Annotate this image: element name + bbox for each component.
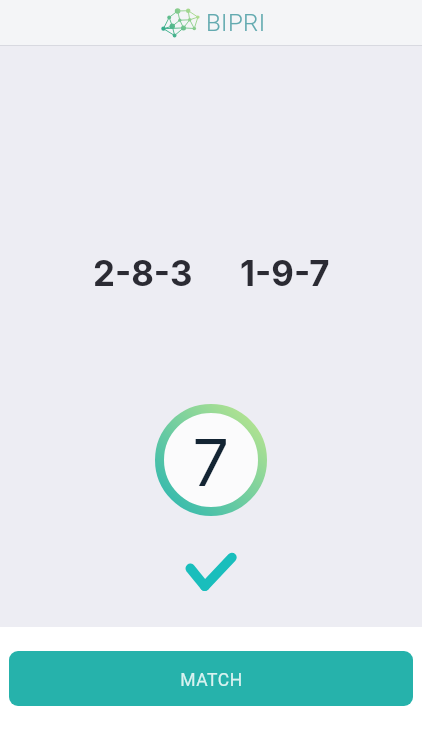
other: BIPRI logo (161, 6, 201, 40)
staticText: MATCH (180, 670, 243, 691)
staticText: 1-9-7 (240, 252, 330, 294)
other: Match confirmed (180, 547, 242, 597)
button[interactable]: MATCH (9, 651, 413, 706)
staticText: BIPRI (206, 9, 266, 37)
staticText: 7 (194, 423, 228, 502)
staticText: 2-8-3 (93, 252, 193, 294)
